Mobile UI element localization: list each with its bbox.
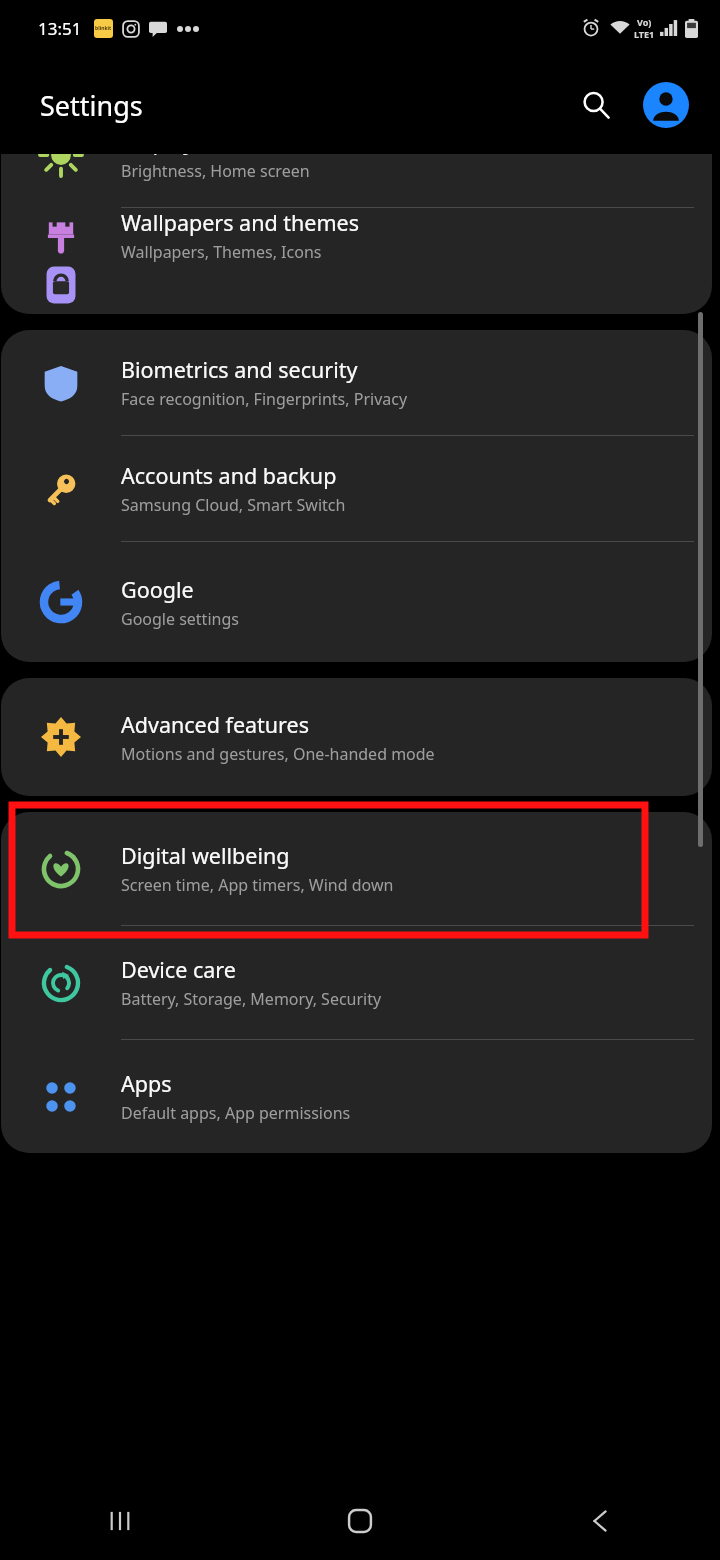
button[interactable]: Search bbox=[568, 77, 624, 133]
button[interactable]: Device care bbox=[1, 926, 712, 1039]
staticText: Advanced features bbox=[121, 710, 309, 739]
staticText: 13:51 bbox=[38, 17, 82, 40]
button[interactable]: Biometrics and security bbox=[1, 330, 712, 435]
staticText: Brightness, Home screen bbox=[121, 160, 310, 182]
staticText: Samsung Cloud, Smart Switch bbox=[121, 494, 346, 516]
staticText: Battery, Storage, Memory, Security bbox=[121, 988, 382, 1010]
staticText: blinkit bbox=[95, 25, 112, 32]
button[interactable]: Recents bbox=[0, 1482, 240, 1560]
staticText: Screen time, App timers, Wind down bbox=[121, 874, 394, 896]
button[interactable]: Home bbox=[240, 1482, 480, 1560]
staticText: Google bbox=[121, 575, 194, 604]
button[interactable]: Digital wellbeing bbox=[1, 812, 712, 925]
staticText: Biometrics and security bbox=[121, 355, 358, 384]
staticText: Motions and gestures, One-handed mode bbox=[121, 743, 435, 765]
button[interactable]: Apps bbox=[1, 1040, 712, 1153]
button[interactable]: Google bbox=[1, 542, 712, 662]
staticText: Google settings bbox=[121, 608, 239, 630]
staticText: Digital wellbeing bbox=[121, 841, 290, 870]
staticText: Vo) bbox=[637, 16, 652, 28]
button[interactable]: Back bbox=[480, 1482, 720, 1560]
staticText: Wallpapers and themes bbox=[121, 208, 359, 237]
staticText: Apps bbox=[121, 1069, 172, 1098]
button[interactable]: Accounts and backup bbox=[1, 436, 712, 541]
staticText: Face recognition, Fingerprints, Privacy bbox=[121, 388, 408, 410]
staticText: Display bbox=[121, 154, 195, 156]
button[interactable]: Account bbox=[638, 77, 694, 133]
staticText: Default apps, App permissions bbox=[121, 1102, 351, 1124]
staticText: Settings bbox=[40, 87, 143, 124]
button[interactable]: Wallpapers and themes bbox=[1, 208, 712, 262]
staticText: Device care bbox=[121, 955, 236, 984]
button[interactable]: Display bbox=[1, 154, 712, 207]
button[interactable]: Advanced features bbox=[1, 678, 712, 796]
staticText: Accounts and backup bbox=[121, 461, 337, 490]
staticText: LTE1 bbox=[634, 28, 655, 40]
staticText: Wallpapers, Themes, Icons bbox=[121, 241, 322, 262]
